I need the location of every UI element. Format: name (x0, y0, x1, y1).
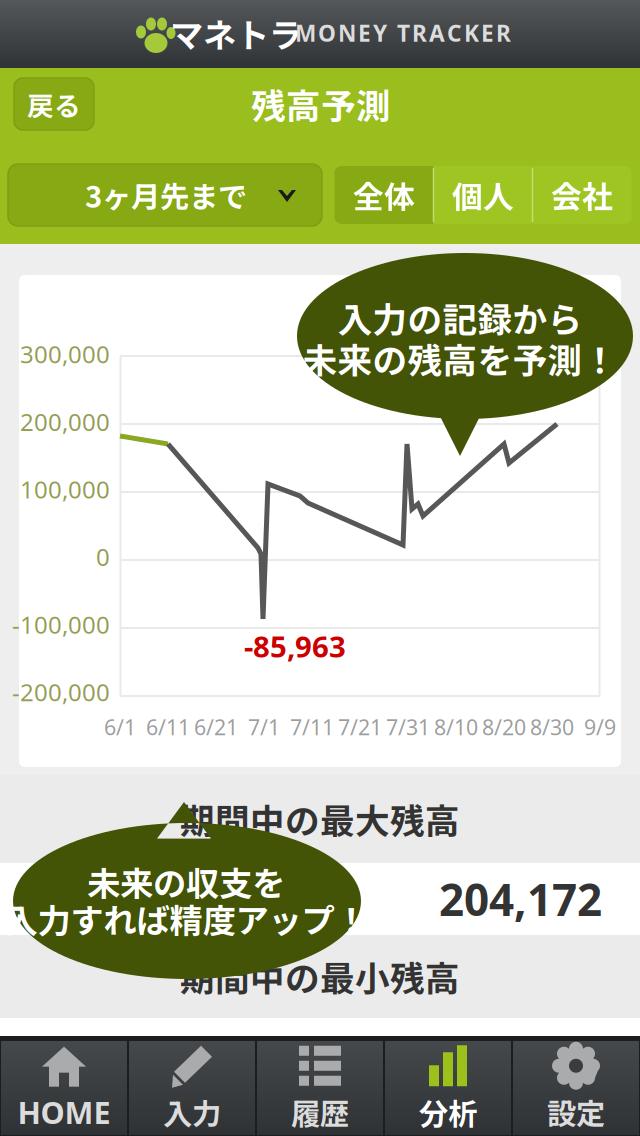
staticText: 期間中の最小残高 (180, 951, 460, 1002)
button[interactable]: 3ヶ月先まで (8, 164, 322, 226)
staticText: 未来の残高を予測！ (302, 333, 617, 384)
staticText: 履歴 (291, 1091, 349, 1133)
staticText: 個人 (452, 173, 514, 217)
staticText: 分析 (419, 1091, 477, 1133)
button[interactable]: 入力 (129, 1041, 255, 1135)
button[interactable]: 履歴 (257, 1041, 383, 1135)
staticText: 入力の記録から (337, 292, 582, 343)
staticText: 100,000 (20, 473, 110, 505)
staticText: -100,000 (12, 608, 110, 640)
staticText: 7/1 (248, 713, 280, 741)
staticText: A (429, 18, 445, 48)
staticText: 未来の収支を (87, 857, 285, 906)
staticText: 204,172 (439, 870, 602, 928)
staticText: 会社 (551, 173, 613, 217)
button[interactable]: 設定 (513, 1041, 639, 1135)
staticText: マネトラ (170, 9, 302, 57)
staticText: HOME (17, 1092, 110, 1132)
staticText: 7/31 (386, 713, 430, 741)
staticText: 300,000 (20, 338, 110, 370)
staticText: 7/11 (290, 713, 334, 741)
button[interactable]: HOME (1, 1041, 127, 1135)
staticText: 6/11 (146, 713, 190, 741)
staticText: 3ヶ月先まで (85, 174, 247, 216)
staticText: K (464, 18, 479, 48)
staticText: 6/21 (194, 713, 238, 741)
staticText: 期間中の最大残高 (180, 794, 460, 844)
staticText: C (447, 18, 462, 48)
staticText: 設定 (547, 1091, 605, 1133)
staticText: N (338, 18, 356, 48)
staticText: 入力 (163, 1091, 221, 1133)
staticText: T (397, 18, 410, 48)
staticText: M (295, 18, 316, 48)
staticText: -85,963 (244, 626, 346, 665)
staticText: -200,000 (12, 676, 110, 708)
staticText: 入力すれば精度アップ！ (4, 894, 367, 943)
staticText: 0 (96, 541, 110, 573)
button[interactable]: 全体 (334, 166, 433, 224)
staticText (389, 18, 395, 48)
staticText: R (412, 18, 427, 48)
staticText: Y (373, 18, 387, 48)
staticText: O (318, 18, 336, 48)
staticText: 9/9 (584, 713, 616, 741)
staticText: 8/10 (434, 713, 478, 741)
staticText: 8/20 (482, 713, 526, 741)
staticText: E (358, 18, 371, 48)
staticText: 全体 (353, 173, 415, 217)
button[interactable]: 個人 (433, 166, 532, 224)
button[interactable]: 戻る (14, 78, 94, 130)
button[interactable]: 会社 (532, 166, 631, 224)
staticText: 戻る (27, 85, 81, 123)
staticText: 200,000 (20, 406, 110, 438)
staticText: 7/21 (338, 713, 382, 741)
staticText: 6/1 (104, 713, 136, 741)
button[interactable]: 分析 (385, 1041, 511, 1135)
staticText: 8/30 (530, 713, 574, 741)
staticText: R (496, 18, 511, 48)
staticText: 残高予測 (251, 79, 391, 129)
staticText: E (481, 18, 494, 48)
